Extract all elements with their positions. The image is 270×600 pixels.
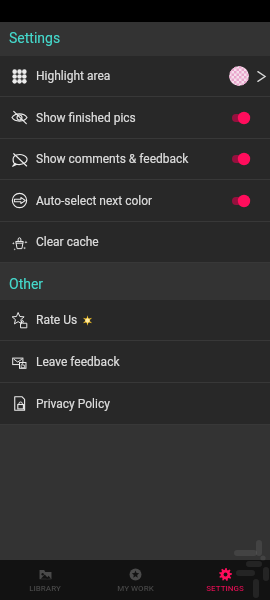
button[interactable]: Toggle	[232, 186, 270, 216]
button[interactable]: MY WORK	[90, 560, 180, 600]
staticText: Rate Us	[36, 313, 78, 327]
button[interactable]: Auto-select next color	[0, 180, 270, 221]
other: Open	[255, 71, 266, 82]
staticText: SETTINGS	[206, 584, 244, 593]
button[interactable]: Show comments & feedback	[0, 139, 270, 179]
staticText: Show comments & feedback	[36, 152, 189, 166]
staticText: LIBRARY	[29, 584, 61, 593]
button[interactable]: Toggle	[232, 144, 270, 174]
button[interactable]: SETTINGS	[180, 560, 270, 600]
staticText: Highlight area	[36, 69, 111, 83]
staticText: Show finished pics	[36, 111, 136, 125]
staticText: Other	[9, 276, 44, 292]
staticText: Privacy Policy	[36, 397, 110, 411]
button[interactable]: Leave feedback	[0, 341, 270, 382]
button[interactable]: Rate Us	[0, 300, 270, 340]
staticText: Auto-select next color	[36, 194, 153, 208]
staticText: Leave feedback	[36, 355, 120, 369]
staticText: MY WORK	[117, 584, 154, 593]
button[interactable]: LIBRARY	[0, 560, 90, 600]
button[interactable]: Show finished pics	[0, 97, 270, 138]
staticText: Clear cache	[36, 235, 99, 249]
button[interactable]: Highlight area	[0, 56, 270, 96]
button[interactable]: Privacy Policy	[0, 383, 270, 424]
button[interactable]: Highlight colour	[229, 66, 249, 86]
staticText: Settings	[9, 30, 61, 46]
button[interactable]: Clear cache	[0, 222, 270, 262]
button[interactable]: Toggle	[232, 103, 270, 133]
